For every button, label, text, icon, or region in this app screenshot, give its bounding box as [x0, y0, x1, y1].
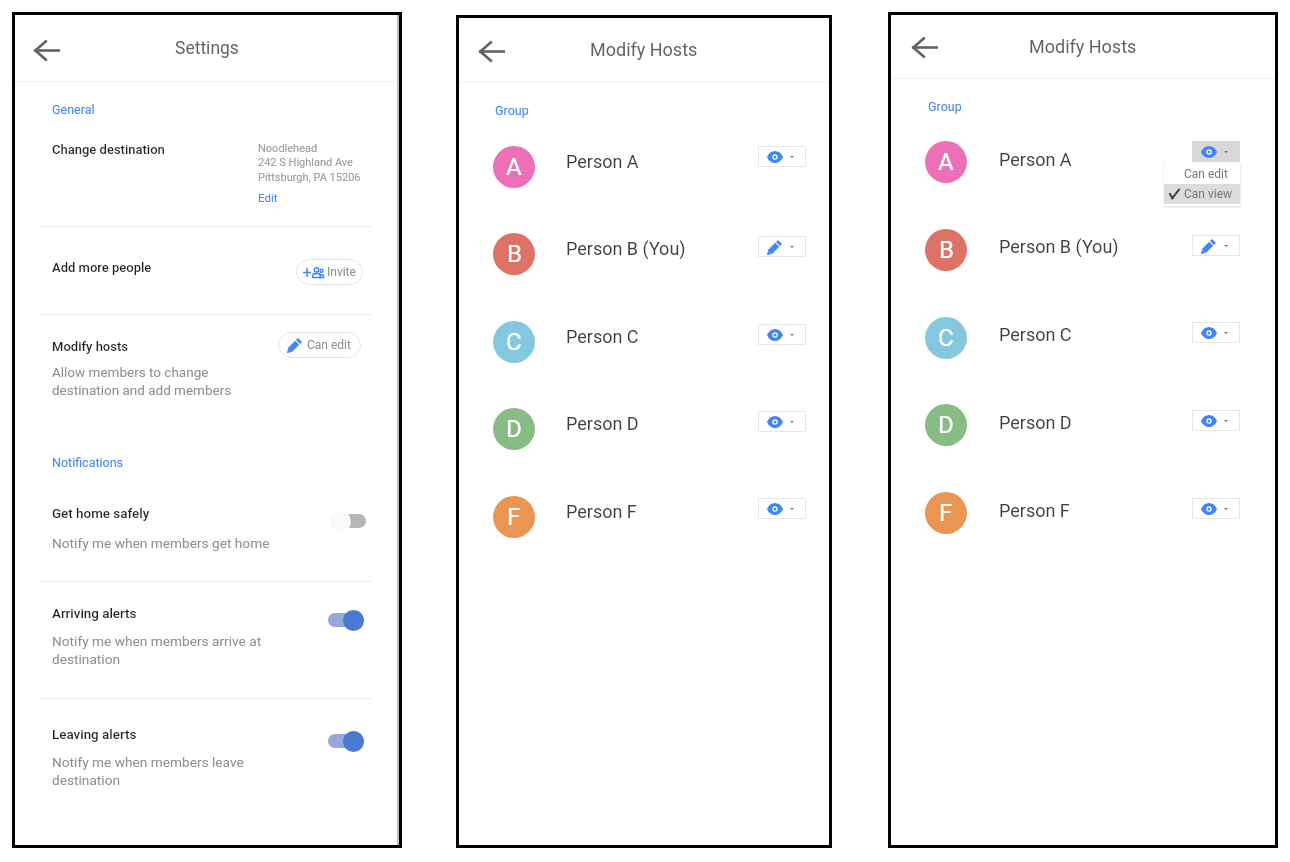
- staticText: D: [938, 411, 954, 439]
- button[interactable]: Back: [472, 31, 512, 71]
- button[interactable]: [15, 95, 399, 226]
- staticText: Group: [495, 103, 529, 118]
- button[interactable]: [459, 117, 829, 204]
- button[interactable]: Can edit: [1164, 163, 1240, 184]
- staticText: Person F: [566, 501, 637, 522]
- button[interactable]: [891, 115, 1275, 203]
- staticText: Arriving alerts: [52, 606, 137, 622]
- staticText: Group: [928, 99, 962, 114]
- staticText: Notifications: [52, 455, 124, 470]
- button[interactable]: Edit: [258, 191, 278, 204]
- button[interactable]: [15, 481, 399, 581]
- button[interactable]: Can view: [758, 146, 806, 167]
- button[interactable]: Invite: [296, 259, 363, 285]
- staticText: Person B (You): [999, 236, 1119, 257]
- staticText: F: [507, 503, 521, 531]
- staticText: Modify Hosts: [1029, 36, 1137, 57]
- staticText: Get home safely: [52, 506, 150, 522]
- staticText: Pittsburgh, PA 15206: [258, 171, 361, 184]
- staticText: Person A: [999, 149, 1072, 170]
- staticText: Settings: [175, 38, 239, 59]
- button[interactable]: Can view: [1192, 141, 1240, 162]
- staticText: Change destination: [52, 142, 165, 157]
- button[interactable]: [15, 314, 399, 430]
- button[interactable]: [15, 581, 399, 698]
- button[interactable]: [459, 292, 829, 379]
- button[interactable]: [328, 609, 364, 631]
- button[interactable]: Can view: [758, 498, 806, 519]
- staticText: Modify hosts: [52, 339, 129, 354]
- button[interactable]: [330, 510, 366, 532]
- staticText: Invite: [327, 265, 356, 279]
- button[interactable]: Can view: [1192, 322, 1240, 343]
- button[interactable]: [459, 379, 829, 466]
- staticText: Person C: [566, 326, 639, 347]
- staticText: Can edit: [307, 338, 351, 352]
- staticText: Person F: [999, 500, 1070, 521]
- staticText: A: [938, 148, 954, 176]
- staticText: C: [506, 328, 522, 356]
- staticText: Notify me when members get home: [52, 535, 270, 551]
- staticText: Allow members to change: [52, 364, 209, 380]
- staticText: Notify me when members leave: [52, 754, 244, 770]
- button[interactable]: Can edit: [758, 236, 806, 257]
- button[interactable]: Can view: [758, 324, 806, 345]
- staticText: Person D: [999, 412, 1072, 433]
- button[interactable]: Can view: [758, 411, 806, 432]
- button[interactable]: [15, 226, 399, 315]
- button[interactable]: [328, 730, 364, 752]
- button[interactable]: [459, 205, 829, 292]
- staticText: Notify me when members arrive at: [52, 633, 262, 649]
- staticText: Leaving alerts: [52, 727, 137, 743]
- button[interactable]: [891, 202, 1275, 290]
- staticText: Can view: [1184, 187, 1233, 201]
- staticText: Noodlehead: [258, 142, 318, 155]
- staticText: B: [507, 240, 522, 268]
- button[interactable]: [15, 698, 399, 800]
- staticText: C: [938, 324, 954, 352]
- staticText: destination: [52, 651, 121, 667]
- staticText: Add more people: [52, 260, 152, 275]
- button[interactable]: Can view: [1192, 498, 1240, 519]
- staticText: Person C: [999, 324, 1072, 345]
- staticText: Person B (You): [566, 238, 686, 259]
- button[interactable]: Back: [905, 27, 945, 67]
- button[interactable]: Can edit: [278, 332, 361, 358]
- staticText: F: [939, 499, 953, 527]
- staticText: General: [52, 102, 95, 117]
- button[interactable]: Back: [27, 30, 67, 70]
- button[interactable]: [891, 378, 1275, 466]
- button[interactable]: [891, 290, 1275, 378]
- button[interactable]: [459, 467, 829, 554]
- staticText: destination and add members: [52, 382, 232, 398]
- staticText: Person D: [566, 413, 639, 434]
- staticText: Modify Hosts: [590, 39, 698, 60]
- staticText: A: [506, 153, 522, 181]
- button[interactable]: Can view: [1192, 410, 1240, 431]
- staticText: destination: [52, 772, 121, 788]
- button[interactable]: [891, 466, 1275, 554]
- staticText: Person A: [566, 151, 639, 172]
- button[interactable]: Can view: [1164, 184, 1240, 204]
- staticText: B: [939, 236, 954, 264]
- staticText: D: [506, 415, 522, 443]
- staticText: Can edit: [1184, 167, 1228, 181]
- staticText: 242 S Highland Ave: [258, 156, 353, 169]
- button[interactable]: Can edit: [1192, 235, 1240, 256]
